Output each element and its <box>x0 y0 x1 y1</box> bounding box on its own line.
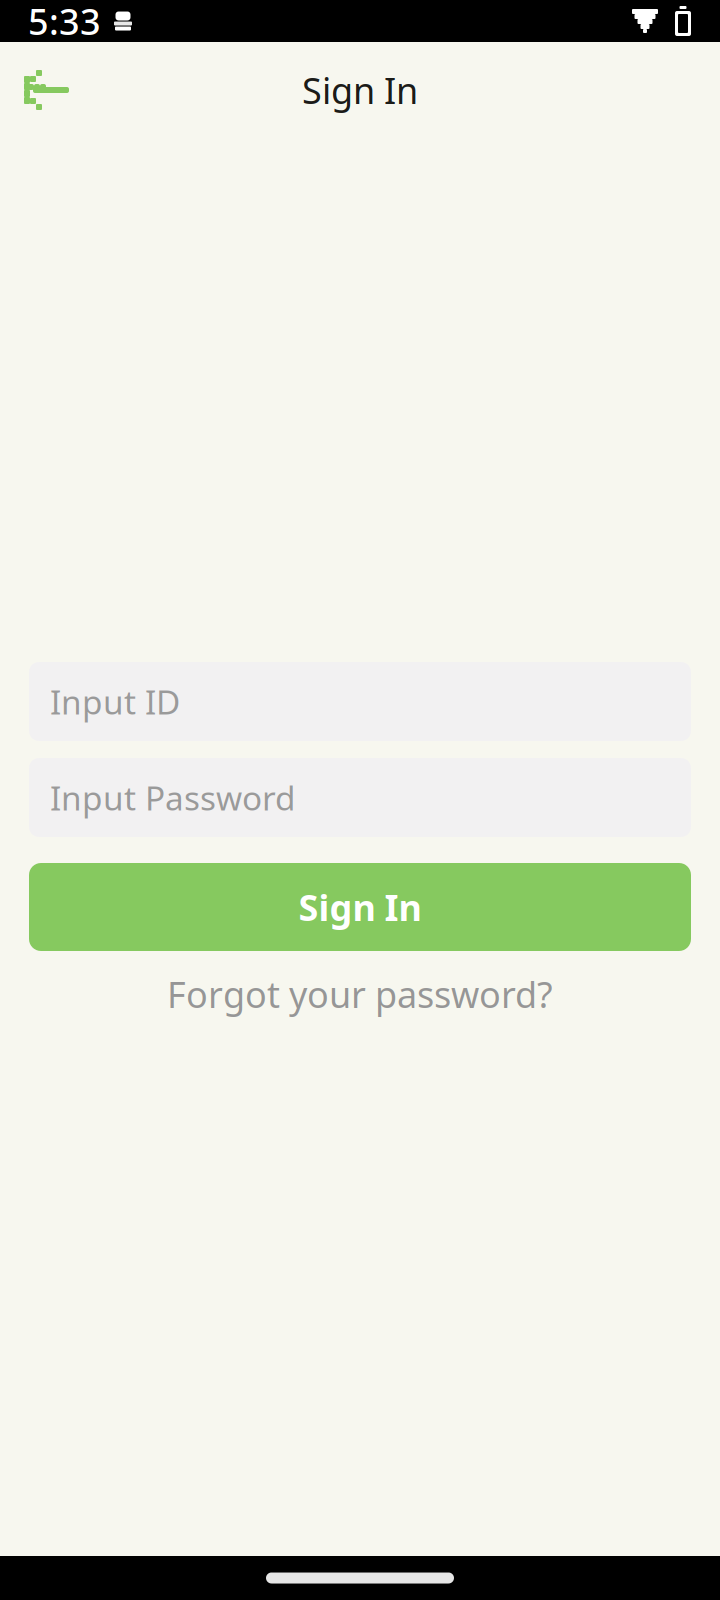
staticText: Input Password <box>50 775 296 820</box>
staticText: Input ID <box>50 679 180 724</box>
staticText: Forgot your password? <box>167 970 553 1018</box>
button[interactable]: Back <box>10 52 86 128</box>
staticText: Sign In <box>298 883 421 931</box>
button[interactable]: Sign In <box>29 863 691 951</box>
button[interactable]: Forgot your password? <box>29 969 691 1019</box>
button[interactable]: Input Password <box>29 758 691 837</box>
staticText: 5:33 <box>28 0 101 45</box>
button[interactable]: Input ID <box>29 662 691 741</box>
staticText: Sign In <box>302 66 418 114</box>
